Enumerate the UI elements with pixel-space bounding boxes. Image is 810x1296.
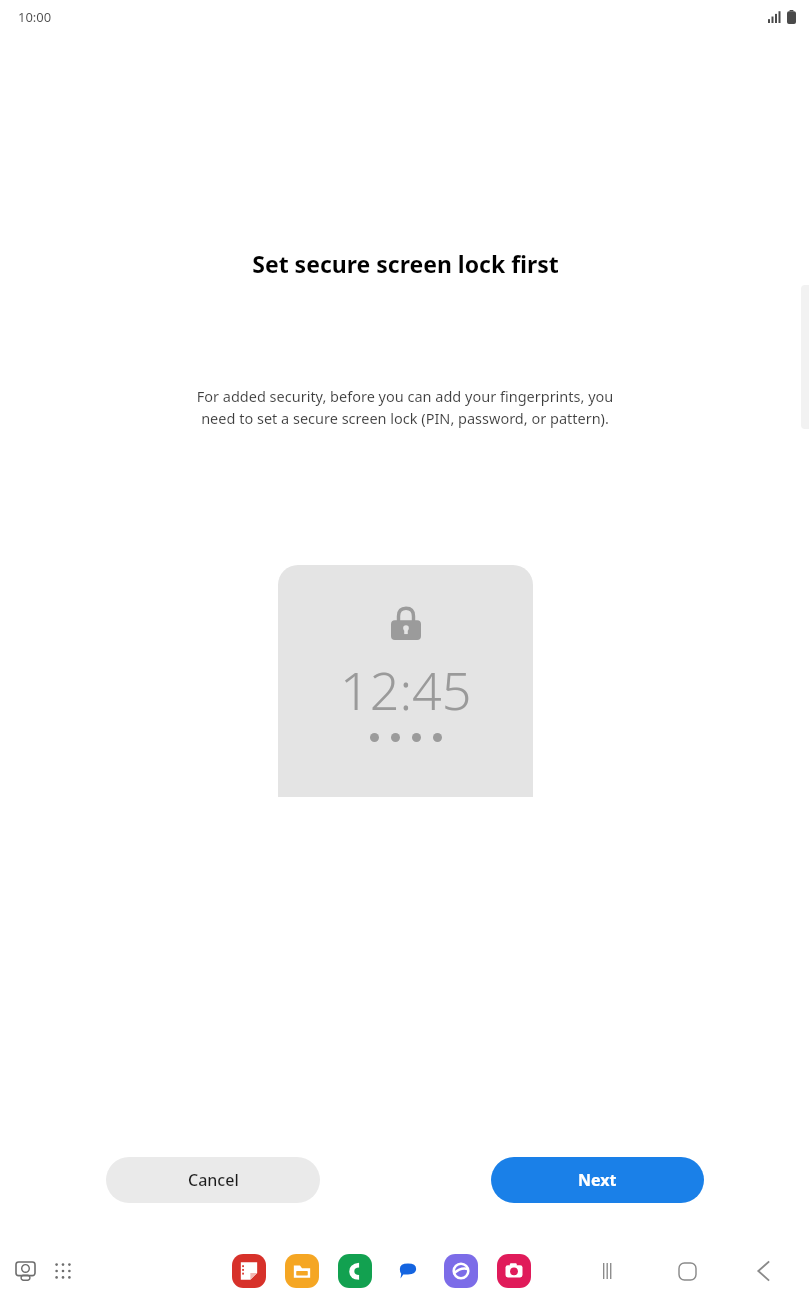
button[interactable]: App shortcut bbox=[338, 1254, 372, 1288]
staticText: Cancel bbox=[188, 1169, 239, 1191]
button[interactable]: App shortcut bbox=[444, 1254, 478, 1288]
button[interactable]: Recents bbox=[584, 1249, 638, 1293]
button[interactable]: App shortcut bbox=[391, 1254, 425, 1288]
button[interactable]: App shortcut bbox=[497, 1254, 531, 1288]
staticText: For added security, before you can add y… bbox=[190, 386, 620, 428]
button[interactable]: Cancel bbox=[106, 1157, 320, 1203]
staticText: Set secure screen lock first bbox=[252, 248, 559, 279]
button[interactable]: Next bbox=[491, 1157, 704, 1203]
staticText: 10:00 bbox=[18, 8, 52, 26]
staticText: 12:45 bbox=[340, 654, 472, 725]
button[interactable]: Home bbox=[660, 1249, 714, 1293]
button[interactable]: App shortcut bbox=[285, 1254, 319, 1288]
button[interactable]: All apps bbox=[46, 1254, 80, 1288]
button[interactable]: Back bbox=[736, 1249, 790, 1293]
button[interactable]: Recent apps bbox=[8, 1254, 42, 1288]
staticText: Next bbox=[578, 1169, 617, 1191]
button[interactable]: App shortcut bbox=[232, 1254, 266, 1288]
